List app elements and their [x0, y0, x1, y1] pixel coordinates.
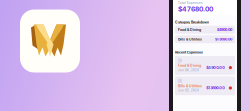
- staticText: Jun 06, 2024: [178, 68, 199, 72]
- staticText: $4900.00: [206, 65, 225, 70]
- staticText: Bills & Utilities: [178, 84, 202, 88]
- staticText: Bills & Utilities: [178, 37, 202, 41]
- staticText: Category Breakdown: [175, 20, 209, 24]
- staticText: $4900.00: [217, 28, 232, 32]
- staticText: Recent Expenses: [175, 50, 203, 54]
- button[interactable]: Food & Dining: [175, 56, 235, 75]
- staticText: Food & Dining: [178, 28, 201, 32]
- staticText: Food & Dining: [178, 63, 201, 68]
- staticText: Jun 05, 2024: [178, 89, 199, 92]
- staticText: Total Expenses: [178, 1, 203, 5]
- button[interactable]: Food & Dining: [175, 26, 235, 34]
- staticText: $13690.00: [215, 37, 232, 41]
- button[interactable]: Bills & Utilities: [175, 35, 235, 43]
- button[interactable]: Bills & Utilities: [175, 76, 235, 95]
- staticText: $47680.00: [178, 5, 213, 13]
- staticText: $13690.00: [206, 86, 225, 90]
